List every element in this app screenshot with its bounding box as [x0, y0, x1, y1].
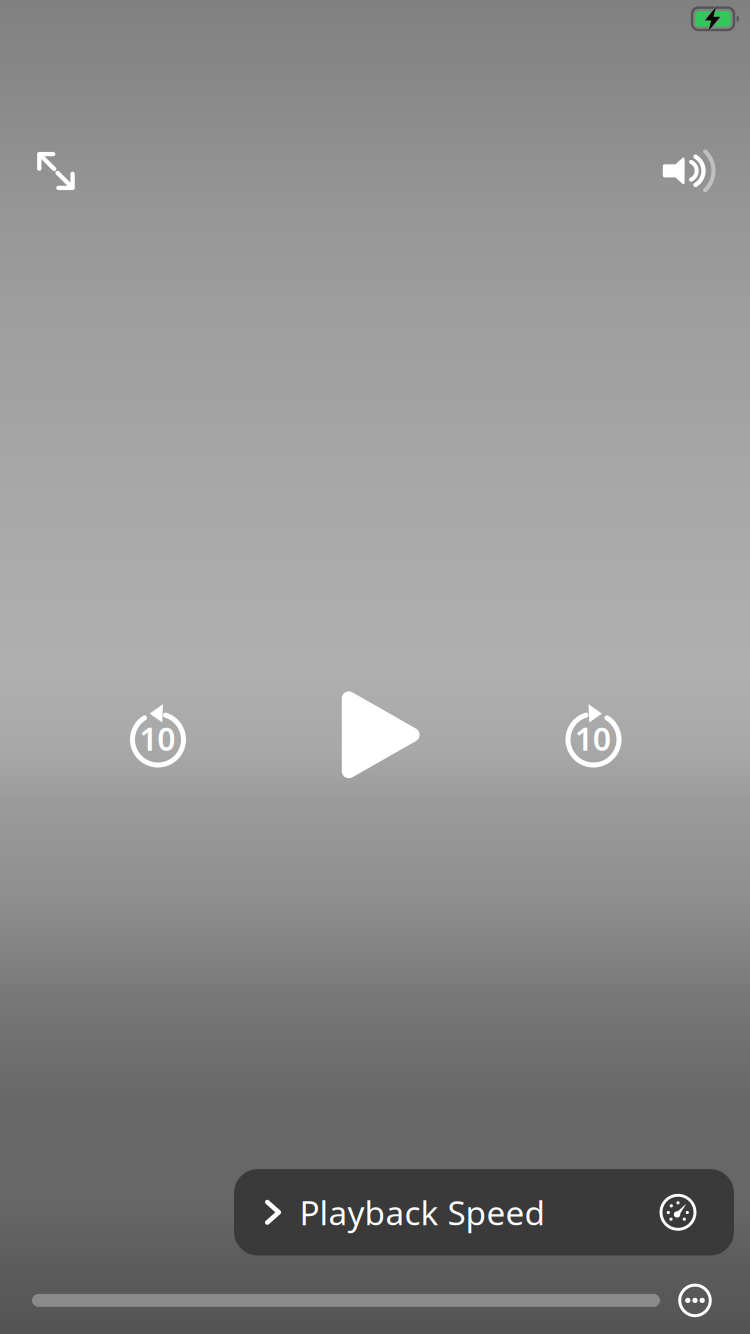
button[interactable]: Playback Speed	[234, 1169, 734, 1255]
button[interactable]: Skip back 10 seconds	[110, 691, 206, 787]
button[interactable]: Skip forward 10 seconds	[545, 691, 641, 787]
button[interactable]: Volume	[648, 135, 738, 207]
staticText: 10	[139, 717, 175, 760]
staticText: Playback Speed	[300, 1190, 546, 1234]
button[interactable]: Play	[323, 674, 445, 796]
staticText: 10	[575, 717, 611, 760]
button[interactable]: Enter full screen	[20, 135, 92, 207]
button[interactable]: More options	[673, 1278, 717, 1322]
